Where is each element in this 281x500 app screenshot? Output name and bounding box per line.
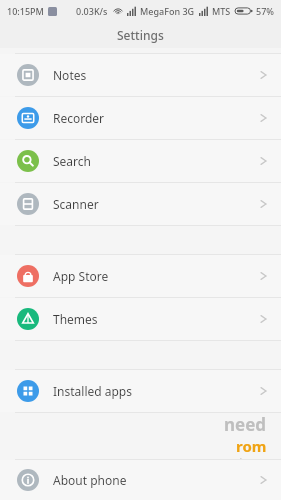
staticText: Themes	[53, 311, 98, 327]
staticText: 57%	[256, 5, 274, 17]
staticText: Settings	[117, 27, 164, 43]
staticText: About phone	[53, 472, 127, 488]
button[interactable]: Search	[0, 140, 281, 182]
staticText: MTS	[212, 5, 231, 17]
staticText: Recorder	[53, 110, 105, 126]
staticText: 0.03K/s	[76, 5, 108, 17]
staticText: App Store	[53, 268, 109, 284]
staticText: rom	[236, 436, 267, 456]
staticText: Scanner	[53, 196, 99, 212]
button[interactable]: App Store	[0, 255, 281, 297]
button[interactable]: Notes	[0, 54, 281, 96]
button[interactable]: Scanner	[0, 183, 281, 225]
button[interactable]: Installed apps	[0, 370, 281, 412]
button[interactable]: Recorder	[0, 97, 281, 139]
staticText: need	[224, 413, 267, 436]
staticText: Search	[53, 153, 91, 169]
staticText: 10:15PM	[7, 5, 44, 17]
button[interactable]: Themes	[0, 298, 281, 340]
staticText: MegaFon 3G	[140, 5, 195, 17]
staticText: Notes	[53, 67, 87, 83]
button[interactable]: About phone	[0, 460, 281, 500]
staticText: Installed apps	[53, 383, 132, 399]
